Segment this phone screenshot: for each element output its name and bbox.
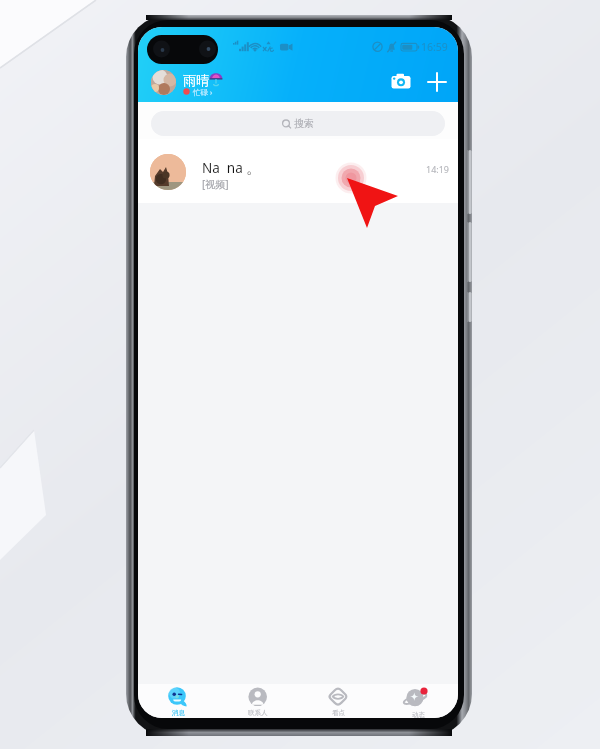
button[interactable]: Na na 。 [138, 139, 458, 203]
staticText: Na na 。 [202, 159, 260, 177]
staticText: 16:59 [421, 40, 448, 54]
staticText: [视频] [202, 177, 229, 191]
button[interactable]: 搜索 [151, 111, 445, 136]
staticText: 雨晴 [183, 72, 209, 88]
button[interactable]: Camera [390, 71, 412, 93]
staticText: 14:19 [426, 163, 450, 175]
staticText: 联系人 [248, 709, 268, 717]
button[interactable]: Add [426, 71, 448, 93]
staticText: 动态 [412, 711, 425, 718]
staticText: 消息 [172, 709, 185, 717]
button[interactable]: 动态 [378, 684, 458, 718]
button[interactable]: 联系人 [218, 684, 298, 718]
button[interactable]: 消息 [138, 684, 218, 718]
button[interactable]: Profile [151, 70, 176, 95]
staticText: 搜索 [294, 117, 314, 130]
button[interactable]: 看点 [298, 684, 378, 718]
staticText: 忙碌 › [193, 87, 213, 97]
staticText: 看点 [332, 709, 345, 717]
